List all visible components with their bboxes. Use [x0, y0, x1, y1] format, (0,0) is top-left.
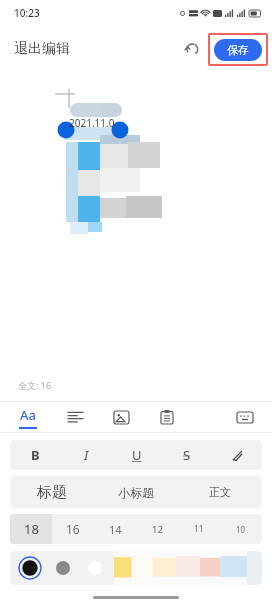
- staticText: B: [31, 446, 40, 464]
- staticText: 11: [194, 523, 204, 535]
- button[interactable]: Text format: [10, 402, 46, 432]
- staticText: 标题: [37, 483, 67, 502]
- button[interactable]: 正文: [178, 476, 262, 508]
- staticText: 10:23: [14, 6, 40, 20]
- button[interactable]: Highlight: [212, 440, 262, 470]
- button[interactable]: Insert image: [104, 402, 138, 432]
- staticText: 小标题: [118, 485, 154, 500]
- button[interactable]: I: [61, 440, 112, 470]
- button[interactable]: White color: [84, 557, 106, 579]
- button[interactable]: 标题: [10, 476, 94, 508]
- staticText: Aa: [20, 406, 36, 424]
- button[interactable]: 保存: [214, 39, 262, 61]
- button[interactable]: Clipboard: [150, 402, 184, 432]
- button[interactable]: 18: [10, 514, 52, 544]
- staticText: 16: [66, 521, 80, 537]
- button[interactable]: Undo: [180, 37, 204, 61]
- button[interactable]: Black color: [18, 556, 42, 580]
- staticText: 保存: [227, 43, 249, 57]
- button[interactable]: U: [112, 440, 162, 470]
- staticText: I: [84, 446, 89, 464]
- button[interactable]: 12: [136, 514, 178, 544]
- button[interactable]: 14: [94, 514, 136, 544]
- staticText: 10: [236, 524, 246, 535]
- button[interactable]: S: [162, 440, 212, 470]
- staticText: 14: [109, 522, 122, 537]
- staticText: 全文: 16: [18, 379, 52, 391]
- staticText: 12: [152, 523, 163, 536]
- button[interactable]: B: [10, 440, 61, 470]
- button[interactable]: 小标题: [94, 476, 178, 508]
- staticText: S: [183, 446, 191, 464]
- button[interactable]: Keyboard: [230, 402, 260, 432]
- button[interactable]: 11: [178, 514, 220, 544]
- button[interactable]: Align: [58, 402, 92, 432]
- staticText: 2021.11.0: [69, 116, 115, 130]
- button[interactable]: 16: [52, 514, 94, 544]
- staticText: 18: [24, 520, 39, 538]
- button[interactable]: 退出编辑: [14, 40, 70, 58]
- button[interactable]: Gray color: [52, 557, 74, 579]
- staticText: 正文: [209, 485, 231, 499]
- staticText: U: [132, 446, 142, 464]
- button[interactable]: 10: [220, 514, 262, 544]
